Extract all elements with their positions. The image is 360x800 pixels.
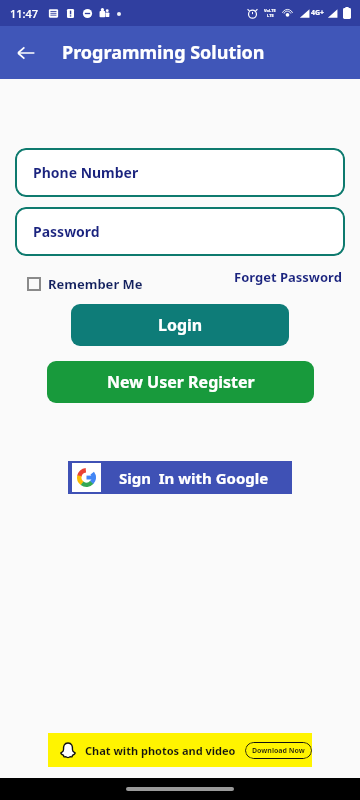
button[interactable]: Chat with photos and video [48,733,312,767]
staticText: Login [158,314,203,336]
button[interactable]: Sign In with Google [68,461,292,494]
staticText: New User Register [107,371,255,393]
staticText: 11:47 [10,6,39,21]
staticText: Sign In with Google [119,468,269,488]
button[interactable]: Forget Password [234,268,342,286]
button[interactable]: Password [15,207,345,256]
button[interactable]: Phone Number [15,148,345,197]
button[interactable]: New User Register [47,361,314,403]
staticText: Download Now [252,746,305,756]
button[interactable]: Remember Me [27,275,143,293]
button[interactable]: Back [8,35,44,71]
staticText: 4G+ [311,8,325,18]
staticText: VoLTE [264,8,276,13]
button[interactable]: Login [71,304,289,346]
staticText: Phone Number [33,163,139,182]
button[interactable]: Download Now [245,742,312,759]
staticText: Chat with photos and video [85,743,236,758]
staticText: Programming Solution [62,40,265,65]
staticText: Remember Me [48,275,143,293]
staticText: LTE [267,13,274,18]
staticText: Password [33,222,100,241]
